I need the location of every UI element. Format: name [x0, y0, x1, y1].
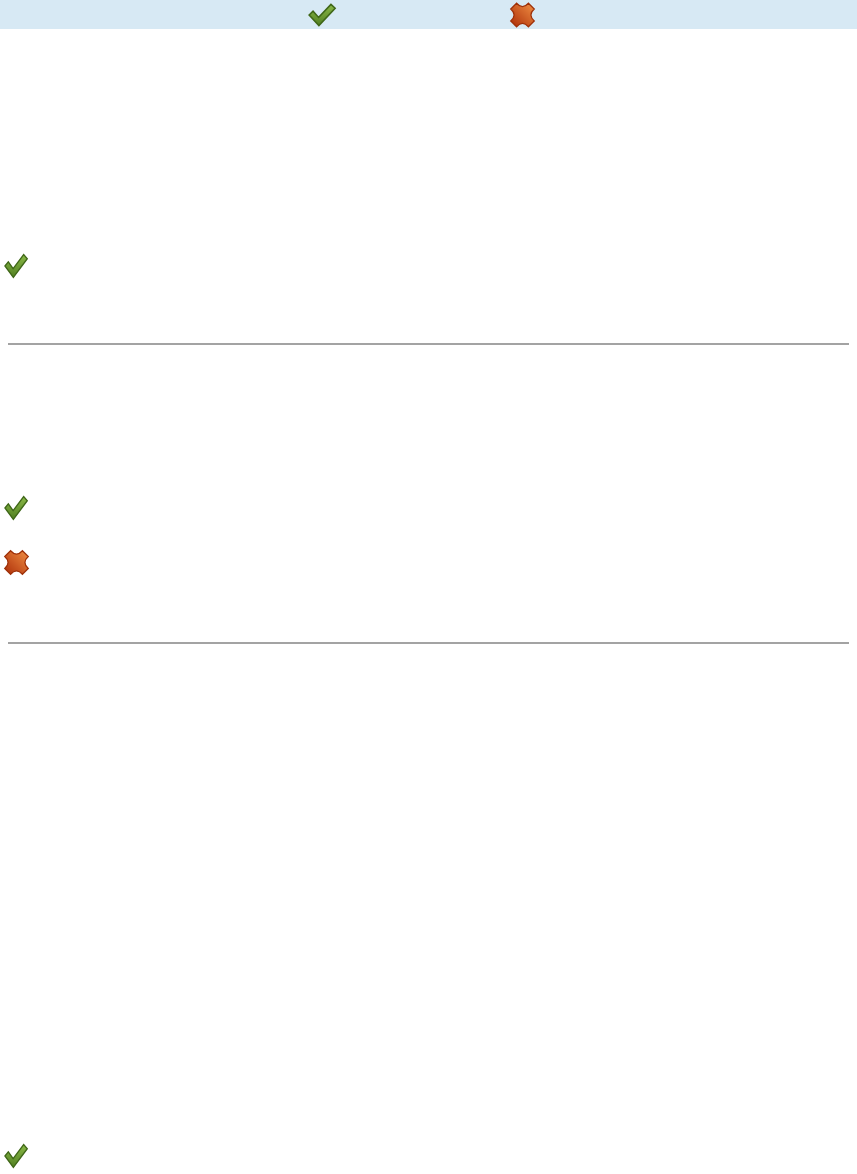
button[interactable]: Not supported	[4, 550, 29, 575]
button[interactable]: Not supported	[510, 3, 535, 27]
other: Not supported	[4, 550, 29, 575]
other: Supported	[308, 3, 336, 27]
other: Supported	[4, 253, 28, 279]
other: Supported	[4, 1143, 28, 1169]
button[interactable]: Supported	[4, 1143, 28, 1169]
other: Supported	[4, 495, 28, 521]
other: Not supported	[510, 3, 535, 27]
button[interactable]: Supported	[4, 253, 28, 279]
button[interactable]: Supported	[308, 3, 336, 27]
button[interactable]: Supported	[4, 495, 28, 521]
